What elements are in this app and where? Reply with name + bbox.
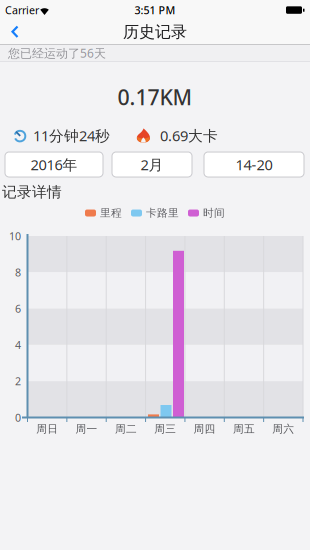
staticText: 周一	[75, 422, 97, 435]
staticText: 4	[15, 338, 21, 352]
staticText: 11分钟24秒	[33, 126, 110, 145]
staticText: 2月	[140, 155, 163, 174]
button[interactable]: 14-20	[204, 152, 304, 177]
staticText: 周五	[233, 422, 255, 435]
staticText: 周日	[36, 422, 58, 435]
staticText: 卡路里	[146, 206, 179, 219]
staticText: 6	[15, 301, 21, 316]
staticText: 3:51 PM	[134, 3, 175, 17]
staticText: 里程	[100, 206, 122, 219]
staticText: Carrier	[5, 3, 39, 17]
button[interactable]: 2月	[112, 152, 192, 177]
staticText: 10	[9, 229, 21, 243]
button[interactable]: Back	[0, 0, 36, 44]
staticText: 您已经运动了56天	[8, 45, 106, 61]
staticText: 2016年	[30, 155, 77, 174]
button[interactable]: 2016年	[5, 152, 103, 177]
staticText: 周四	[194, 422, 216, 435]
staticText: 14-20	[235, 155, 272, 174]
staticText: 时间	[203, 206, 225, 219]
staticText: 周六	[272, 422, 294, 435]
staticText: 0.69大卡	[160, 126, 218, 145]
staticText: 周三	[154, 422, 176, 435]
staticText: 记录详情	[2, 183, 62, 201]
staticText: 周二	[115, 422, 137, 435]
staticText: 0	[15, 410, 21, 425]
staticText: 8	[15, 265, 21, 279]
staticText: 0.17KM	[117, 83, 192, 111]
staticText: 历史记录	[123, 22, 187, 42]
staticText: 2	[15, 374, 21, 388]
